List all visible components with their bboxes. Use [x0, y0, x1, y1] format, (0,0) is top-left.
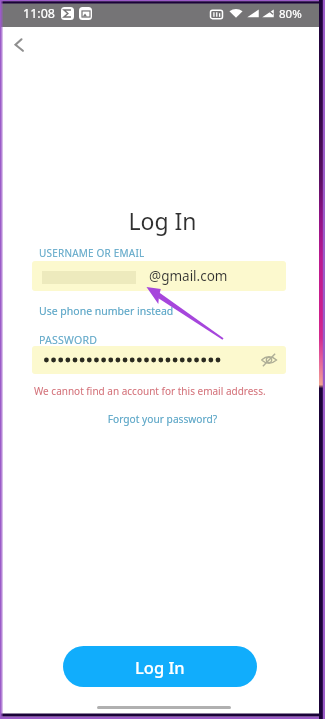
button[interactable]: Back: [6, 32, 32, 58]
button[interactable]: Show password: [260, 351, 278, 369]
button[interactable]: Use phone number instead: [39, 304, 174, 318]
button[interactable]: Show password: [32, 346, 286, 374]
staticText: PASSWORD: [39, 333, 98, 347]
staticText: Log In: [0, 205, 325, 236]
staticText: USERNAME OR EMAIL: [39, 246, 145, 260]
staticText: @gmail.com: [149, 267, 228, 285]
staticText: 11:08: [23, 5, 55, 22]
button[interactable]: Forgot your password?: [0, 412, 325, 426]
staticText: Log In: [135, 656, 185, 678]
staticText: 80%: [279, 6, 302, 22]
button[interactable]: @gmail.com: [32, 261, 286, 291]
button[interactable]: Log In: [63, 646, 257, 687]
staticText: We cannot find an account for this email…: [34, 384, 266, 398]
